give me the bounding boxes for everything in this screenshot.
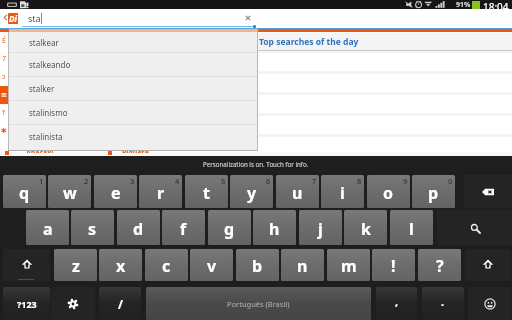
staticText: m — [341, 255, 357, 277]
staticText: stalinista — [29, 131, 63, 142]
button[interactable]: d — [117, 210, 160, 245]
staticText: stalker — [29, 83, 55, 94]
staticText: 18:04 — [483, 0, 509, 9]
staticText: d — [133, 218, 144, 240]
button[interactable]: g — [208, 210, 251, 245]
button[interactable]: stalinismo — [9, 101, 258, 124]
staticText: s — [88, 218, 97, 240]
button[interactable]: Di — [8, 13, 18, 24]
staticText: stalkeando — [29, 59, 71, 70]
staticText: 3 — [130, 176, 135, 186]
staticText: 8 — [357, 176, 362, 186]
button[interactable]: s — [71, 210, 114, 245]
staticText: Abacaxi — [26, 148, 54, 153]
staticText: sta — [28, 12, 41, 24]
staticText: 5 — [221, 176, 226, 186]
button[interactable]: É — [0, 32, 8, 50]
staticText: stalinismo — [29, 107, 68, 118]
staticText: e — [111, 182, 121, 204]
button[interactable] — [257, 95, 512, 113]
button[interactable]: stalinista — [9, 125, 258, 148]
button[interactable]: stalker — [9, 77, 258, 100]
button[interactable]: Top searches of the day — [257, 33, 512, 50]
button[interactable]: c — [145, 249, 188, 281]
button[interactable]: o — [367, 175, 410, 208]
button[interactable]: b — [236, 249, 279, 281]
button[interactable]: . — [422, 287, 464, 320]
button[interactable]: Backspace — [464, 175, 512, 208]
button[interactable]: y — [230, 175, 273, 208]
staticText: k — [361, 218, 371, 240]
button[interactable]: Personalization is on. Touch for info. — [0, 156, 512, 172]
button[interactable]: Search — [437, 210, 512, 245]
button[interactable]: Settings — [51, 287, 95, 320]
button[interactable]: , — [376, 287, 417, 320]
staticText: 91% — [456, 0, 471, 9]
button[interactable]: t — [185, 175, 228, 208]
staticText: Top searches of the day — [259, 36, 359, 48]
button[interactable]: 7 — [0, 50, 8, 68]
button[interactable]: ?123 — [3, 287, 50, 320]
staticText: n — [297, 255, 308, 277]
button[interactable]: stalkear — [9, 32, 258, 52]
staticText: ✱ — [1, 127, 7, 135]
button[interactable]: Shift — [465, 249, 511, 281]
button[interactable]: Shift — [3, 249, 50, 281]
button[interactable]: u — [276, 175, 319, 208]
button[interactable] — [257, 137, 512, 155]
staticText: f — [180, 218, 187, 240]
staticText: c — [162, 255, 171, 277]
button[interactable] — [257, 74, 512, 92]
button[interactable]: ɔ — [0, 68, 8, 86]
button[interactable]: f — [162, 210, 205, 245]
button[interactable]: Back — [1, 9, 10, 26]
staticText: b — [252, 255, 263, 277]
button[interactable]: x — [99, 249, 142, 281]
staticText: ɔ — [2, 72, 6, 82]
button[interactable]: ✱ — [0, 122, 8, 140]
staticText: 2 — [84, 176, 89, 186]
button[interactable]: v — [190, 249, 233, 281]
staticText: . — [441, 294, 445, 309]
button[interactable] — [257, 53, 512, 71]
button[interactable]: q — [3, 175, 46, 208]
button[interactable]: a — [26, 210, 69, 245]
staticText: x — [116, 255, 126, 277]
button[interactable]: stalkeando — [9, 53, 258, 76]
button[interactable]: l — [390, 210, 433, 245]
button[interactable]: p — [412, 175, 455, 208]
button[interactable]: i — [321, 175, 364, 208]
staticText: Personalization is on. Touch for info. — [203, 160, 309, 168]
button[interactable]: ↑ — [0, 104, 8, 122]
button[interactable]: ? — [418, 249, 461, 281]
button[interactable]: ≡ — [0, 86, 8, 104]
staticText: stalkear — [29, 37, 59, 48]
staticText: 0 — [448, 176, 453, 186]
staticText: ≡ — [1, 91, 7, 99]
button[interactable]: k — [344, 210, 387, 245]
staticText: Di — [9, 13, 17, 24]
button[interactable]: n — [281, 249, 324, 281]
staticText: u — [292, 182, 303, 204]
button[interactable]: Emoji — [468, 287, 511, 320]
button[interactable]: ! — [372, 249, 415, 281]
button[interactable]: w — [48, 175, 91, 208]
button[interactable]: Português (Brasil) — [146, 287, 371, 320]
staticText: , — [395, 294, 399, 309]
staticText: y — [247, 182, 257, 204]
button[interactable]: m — [327, 249, 370, 281]
button[interactable]: Clear search — [243, 13, 253, 23]
staticText: / — [118, 296, 123, 312]
button[interactable] — [257, 116, 512, 134]
staticText: 7 — [312, 176, 317, 186]
staticText: o — [383, 182, 394, 204]
button[interactable]: / — [99, 287, 141, 320]
staticText: h — [269, 218, 280, 240]
staticText: r — [157, 182, 165, 204]
button[interactable]: z — [54, 249, 97, 281]
button[interactable]: e — [94, 175, 137, 208]
button[interactable]: h — [253, 210, 296, 245]
staticText: j — [318, 218, 323, 240]
button[interactable]: r — [139, 175, 182, 208]
button[interactable]: j — [299, 210, 342, 245]
